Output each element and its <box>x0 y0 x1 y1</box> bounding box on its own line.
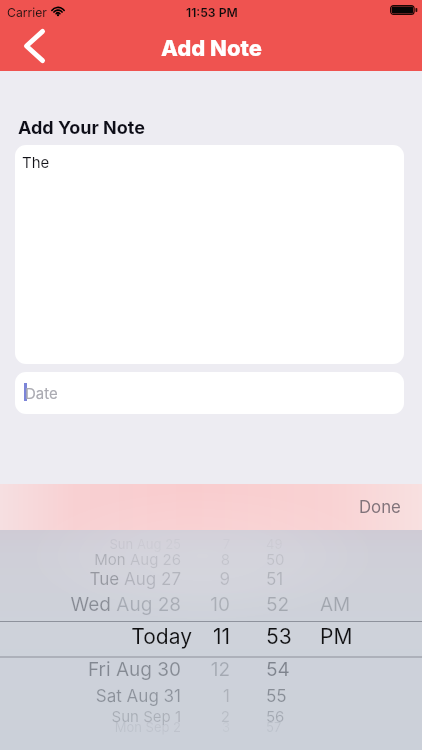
staticText: Today <box>131 624 192 649</box>
staticText: 12 <box>210 658 230 681</box>
staticText: Sun Sep 1 <box>111 707 181 725</box>
staticText: 50 <box>266 550 285 568</box>
staticText: 55 <box>266 686 287 707</box>
staticText: Done <box>359 497 401 517</box>
staticText: Add Your Note <box>18 117 145 139</box>
button[interactable]: Date <box>15 372 404 414</box>
staticText: Tue Aug 27 <box>89 569 181 590</box>
staticText: 11:53 PM <box>186 5 238 20</box>
staticText: AM <box>320 593 351 616</box>
staticText: 53 <box>266 624 292 649</box>
staticText: 8 <box>220 550 230 568</box>
staticText: 3 <box>221 719 230 735</box>
staticText: Mon Aug 26 <box>94 550 181 568</box>
staticText: 9 <box>219 569 230 590</box>
staticText: 11 <box>212 624 230 649</box>
staticText: Sat Aug 31 <box>95 686 181 707</box>
staticText: Mon Sep 2 <box>114 719 181 735</box>
staticText: Fri Aug 30 <box>87 658 181 681</box>
staticText: Carrier <box>7 5 47 20</box>
staticText: 2 <box>220 707 230 725</box>
staticText: 51 <box>266 569 284 590</box>
staticText: 57 <box>266 719 282 735</box>
staticText: Add Note <box>161 35 262 62</box>
staticText: 56 <box>266 707 285 725</box>
button[interactable]: Done <box>339 488 422 526</box>
button[interactable]: The <box>15 145 404 364</box>
staticText: The <box>22 153 50 171</box>
staticText: PM <box>320 624 353 649</box>
button[interactable]: Back <box>24 27 52 65</box>
staticText: Date <box>25 384 58 402</box>
staticText: 52 <box>266 593 290 616</box>
staticText: 10 <box>210 593 230 616</box>
staticText: 1 <box>223 686 230 707</box>
staticText: 54 <box>266 658 290 681</box>
staticText: Wed Aug 28 <box>70 593 181 616</box>
